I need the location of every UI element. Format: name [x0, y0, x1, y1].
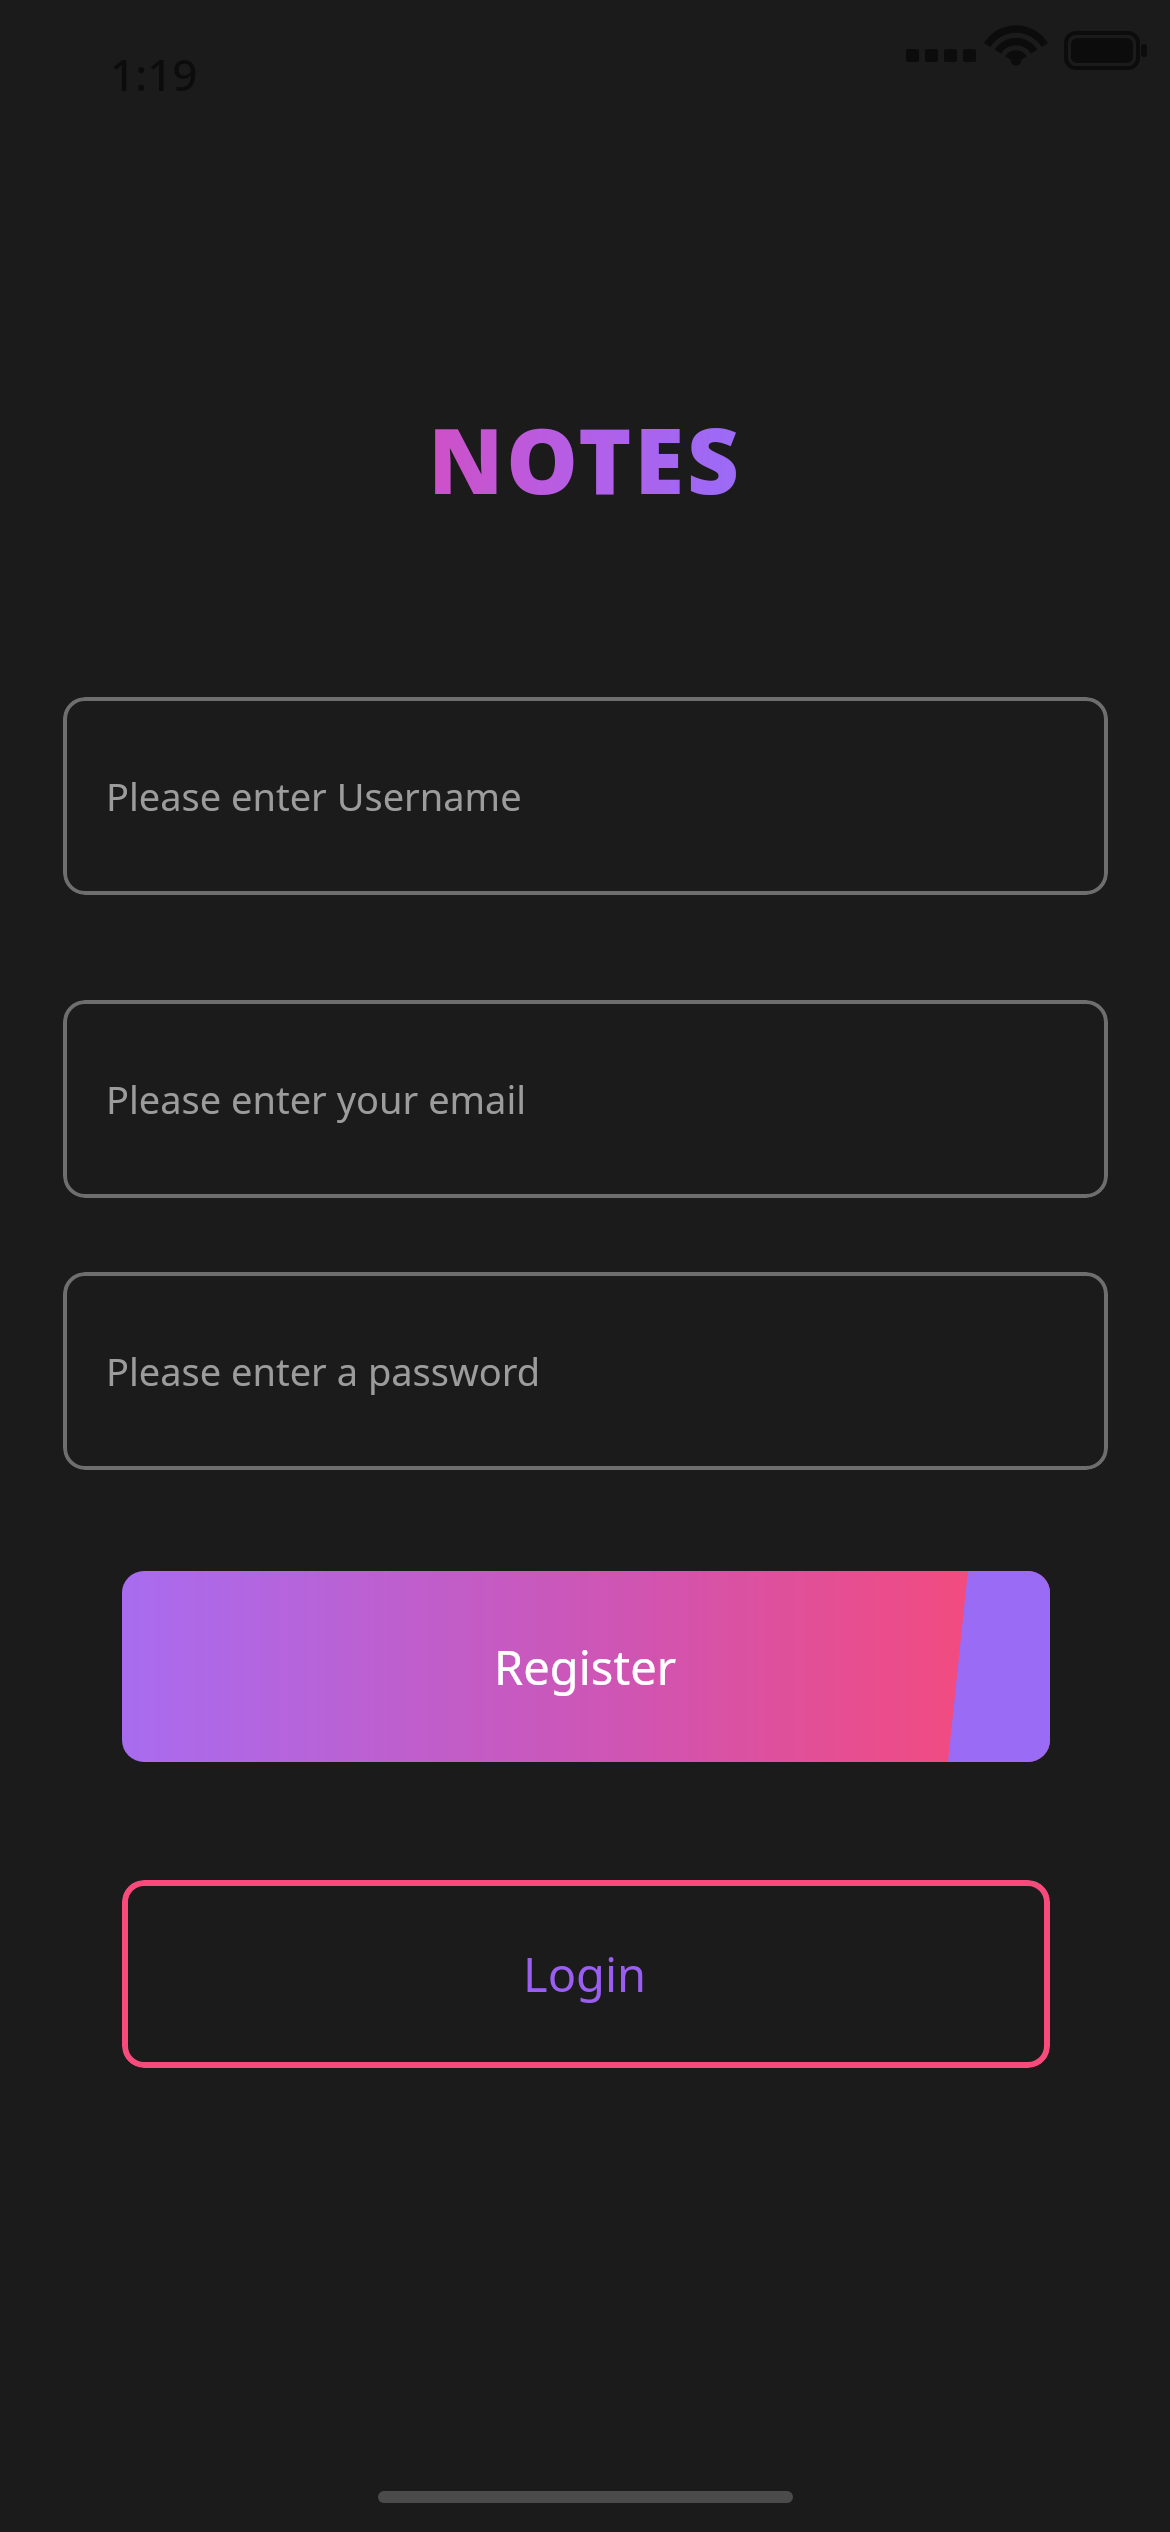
button[interactable]: Please enter your email: [63, 1000, 1108, 1198]
staticText: Please enter Username: [106, 770, 522, 822]
staticText: 1:19: [110, 44, 198, 104]
staticText: NOTES: [428, 398, 742, 521]
staticText: Please enter your email: [106, 1073, 527, 1125]
staticText: Please enter a password: [106, 1345, 541, 1397]
button[interactable]: Please enter Username: [63, 697, 1108, 895]
button[interactable]: Login: [122, 1880, 1050, 2068]
button[interactable]: Please enter a password: [63, 1272, 1108, 1470]
staticText: Login: [523, 1942, 647, 2006]
staticText: Register: [494, 1635, 677, 1699]
button[interactable]: Register: [122, 1571, 1050, 1762]
other: Home indicator: [378, 2491, 793, 2503]
